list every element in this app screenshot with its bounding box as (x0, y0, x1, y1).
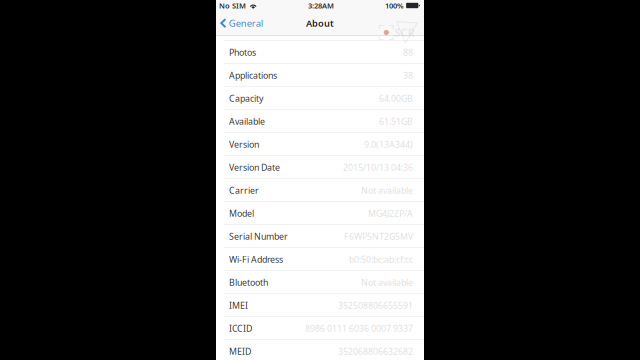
staticText: SCR (395, 25, 415, 40)
button[interactable]: Version (216, 133, 424, 156)
staticText: MG4J2ZP/A (368, 207, 413, 219)
staticText: Capacity (229, 92, 263, 104)
button[interactable]: Serial Number (216, 225, 424, 248)
staticText: 3:28AM (308, 0, 334, 11)
staticText: 88 (403, 46, 413, 58)
button[interactable]: ICCID (216, 317, 424, 340)
staticText: IMEI (229, 299, 248, 311)
staticText: Wi-Fi Address (229, 253, 283, 265)
staticText: 9.0(13A344) (364, 138, 413, 150)
staticText: 8986 0111 6036 0007 9337 (305, 322, 413, 334)
staticText: F6WP5NT2G5MV (344, 230, 413, 242)
staticText: Version (229, 138, 259, 150)
button[interactable]: Carrier (216, 179, 424, 202)
button[interactable]: Photos (216, 41, 424, 64)
staticText: Available (229, 115, 265, 127)
button[interactable]: Model (216, 202, 424, 225)
staticText: Applications (229, 69, 277, 81)
staticText: 38 (403, 69, 413, 81)
staticText: 2015/10/13 04:36 (343, 161, 413, 173)
staticText: MEID (229, 345, 251, 357)
button[interactable]: General (216, 13, 269, 34)
staticText: Not available (361, 276, 413, 288)
staticText: b0:50:bc:ab:cf:cc (349, 253, 413, 265)
staticText: Carrier (229, 184, 259, 196)
staticText: Model (229, 207, 254, 219)
staticText: Bluetooth (229, 276, 268, 288)
button[interactable]: Applications (216, 64, 424, 87)
button[interactable]: Bluetooth (216, 271, 424, 294)
staticText: Version Date (229, 161, 280, 173)
staticText: ICCID (229, 322, 252, 334)
staticText: General (229, 17, 263, 30)
button[interactable]: MEID (216, 340, 424, 360)
button[interactable]: Version Date (216, 156, 424, 179)
staticText: 352068806632682 (338, 345, 413, 357)
button[interactable]: Wi-Fi Address (216, 248, 424, 271)
staticText: Photos (229, 46, 256, 58)
staticText: 64.00GB (379, 92, 413, 104)
staticText: No SIM (219, 0, 246, 11)
staticText: Not available (361, 184, 413, 196)
staticText: About (306, 17, 334, 29)
staticText: Serial Number (229, 230, 288, 242)
staticText: 352508806655591 (338, 299, 413, 311)
staticText: 61.51GB (379, 115, 413, 127)
button[interactable]: Available (216, 110, 424, 133)
button[interactable]: Capacity (216, 87, 424, 110)
button[interactable]: IMEI (216, 294, 424, 317)
staticText: 100% (385, 0, 404, 11)
